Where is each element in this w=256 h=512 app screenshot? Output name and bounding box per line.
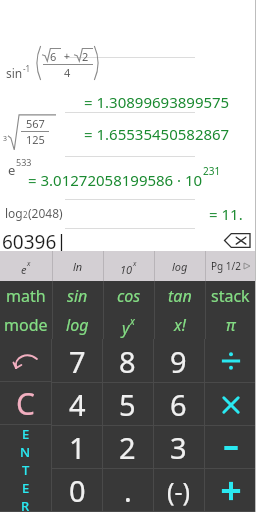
button[interactable]: 7 (52, 339, 102, 383)
staticText: 3 (170, 428, 187, 467)
button[interactable]: 9 (153, 339, 204, 383)
button[interactable]: (-) (153, 469, 204, 512)
staticText: = 1.65535450582867 (84, 124, 230, 144)
button[interactable]: stack (205, 281, 256, 310)
staticText: x (27, 259, 31, 269)
button[interactable]: Undo (0, 339, 51, 382)
button[interactable]: sin (52, 281, 103, 310)
staticText: (2048) (28, 205, 63, 221)
button[interactable]: 3 (153, 426, 204, 469)
button[interactable]: Backspace (224, 233, 250, 248)
button[interactable]: Multiply (205, 383, 256, 426)
staticText: 4 (64, 65, 71, 80)
staticText: x! (174, 314, 186, 336)
button[interactable]: 4 (52, 383, 102, 426)
button[interactable]: Pg 1/2 (205, 251, 256, 281)
staticText: π (226, 314, 236, 336)
button[interactable]: 0 (52, 469, 102, 512)
staticText: 10 (120, 262, 133, 277)
staticText: 60396| (2, 229, 67, 255)
button[interactable]: Subtract (205, 426, 256, 469)
staticText: 125 (26, 132, 45, 147)
button[interactable]: 2 (102, 426, 153, 469)
button[interactable]: Add (205, 469, 256, 512)
staticText: 6 (50, 49, 57, 64)
staticText: 2 (82, 49, 89, 64)
staticText: 1 (69, 428, 86, 467)
button[interactable]: C (0, 382, 51, 425)
staticText: 2 (23, 209, 28, 220)
staticText: 9 (170, 342, 187, 381)
staticText: 7 (69, 342, 86, 381)
staticText: x (133, 259, 137, 269)
staticText: 8 (119, 342, 136, 381)
staticText: + (61, 48, 74, 63)
staticText: log (172, 259, 188, 274)
button[interactable]: e (0, 251, 52, 281)
staticText: tan (168, 285, 192, 307)
button[interactable]: cos (103, 281, 154, 310)
staticText: (-) (167, 474, 191, 508)
button[interactable]: . (102, 469, 153, 512)
staticText: x (130, 314, 135, 328)
staticText: -1 (23, 63, 31, 74)
staticText: = 3.01272058199586 · 10 (28, 170, 203, 190)
staticText: stack (211, 285, 250, 307)
staticText: mode (4, 314, 48, 336)
staticText: cos (117, 285, 141, 307)
staticText: = 11. (209, 204, 243, 224)
staticText: N (20, 443, 31, 461)
staticText: y (122, 317, 130, 339)
staticText: ln (73, 259, 83, 274)
button[interactable]: 8 (102, 339, 153, 383)
staticText: = 1.30899693899575 (84, 92, 230, 112)
staticText: log (5, 205, 23, 221)
staticText: 567 (26, 116, 45, 131)
button[interactable]: 10 (103, 251, 154, 281)
staticText: E (22, 425, 30, 443)
staticText: . (124, 471, 132, 510)
button[interactable]: tan (154, 281, 205, 310)
staticText: T (22, 461, 30, 479)
staticText: 231 (203, 164, 221, 178)
button[interactable]: 6 (153, 383, 204, 426)
staticText: R (21, 497, 30, 512)
staticText: C (16, 383, 35, 424)
staticText: 6 (170, 385, 187, 424)
staticText: 3 (3, 134, 8, 144)
staticText: sin (6, 65, 23, 81)
staticText: 0 (69, 471, 86, 510)
button[interactable]: y (103, 310, 154, 339)
button[interactable]: ln (52, 251, 103, 281)
staticText: Pg 1/2 (211, 259, 241, 273)
button[interactable]: 5 (102, 383, 153, 426)
button[interactable]: log (52, 310, 103, 339)
staticText: log (66, 314, 89, 336)
staticText: e (8, 161, 16, 179)
staticText: 533 (16, 156, 32, 168)
button[interactable]: log (154, 251, 205, 281)
staticText: math (6, 285, 46, 307)
button[interactable]: E (0, 425, 51, 512)
staticText: e (21, 262, 27, 277)
staticText: 4 (69, 385, 86, 424)
button[interactable]: x! (154, 310, 205, 339)
staticText: 2 (119, 428, 136, 467)
staticText: E (22, 479, 30, 497)
button[interactable]: mode (0, 310, 52, 339)
staticText: 5 (119, 385, 136, 424)
button[interactable]: Divide (205, 339, 256, 383)
button[interactable]: π (205, 310, 256, 339)
button[interactable]: 1 (52, 426, 102, 469)
staticText: sin (67, 285, 88, 307)
button[interactable]: math (0, 281, 52, 310)
